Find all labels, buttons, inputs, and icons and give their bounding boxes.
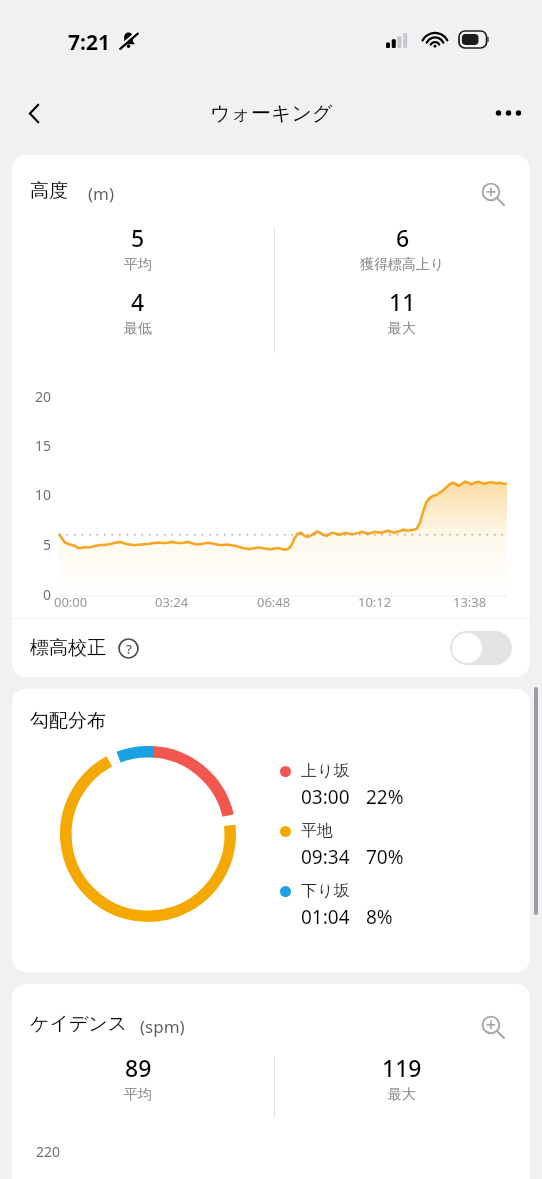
staticText: 最大 [388, 320, 416, 338]
staticText: 5 [43, 535, 52, 554]
staticText: 上り坂 [301, 761, 350, 781]
staticText: 11 [389, 286, 416, 317]
staticText: 22% [366, 784, 404, 810]
button[interactable]: Expand cadence chart [472, 1006, 514, 1048]
staticText: ウォーキング [210, 101, 333, 126]
staticText: 0 [43, 585, 52, 604]
staticText: 標高校正 [30, 636, 106, 660]
staticText: 13:38 [453, 593, 487, 611]
staticText: 勾配分布 [30, 709, 106, 733]
staticText: 5 [131, 222, 145, 253]
staticText: 89 [125, 1052, 152, 1083]
staticText: 01:04 [301, 904, 350, 930]
staticText: ? [126, 640, 132, 658]
staticText: 7:21 [68, 28, 110, 57]
staticText: 220 [36, 1142, 61, 1161]
staticText: 00:00 [54, 593, 88, 611]
button[interactable]: More options [480, 85, 536, 141]
staticText: 6 [396, 222, 410, 253]
staticText: 15 [35, 436, 52, 455]
staticText: 平均 [124, 256, 152, 274]
staticText: 下り坂 [301, 881, 350, 901]
staticText: 4 [131, 286, 145, 317]
button[interactable]: Back [6, 85, 62, 141]
staticText: 平均 [124, 1086, 152, 1104]
staticText: 高度 [30, 179, 68, 203]
staticText: 06:48 [257, 593, 291, 611]
staticText: 最低 [124, 320, 152, 338]
staticText: ケイデンス [30, 1012, 128, 1036]
staticText: 8% [366, 904, 393, 930]
staticText: 平地 [301, 821, 333, 841]
staticText: 10 [35, 485, 52, 504]
staticText: 10:12 [358, 593, 392, 611]
button[interactable]: 標高校正 [12, 619, 530, 677]
staticText: 獲得標高上り [360, 256, 445, 274]
staticText: (spm) [140, 1015, 185, 1038]
staticText: 119 [382, 1052, 422, 1083]
staticText: 09:34 [301, 844, 350, 870]
staticText: 20 [35, 387, 52, 406]
staticText: 03:24 [155, 593, 189, 611]
staticText: (m) [88, 182, 115, 205]
staticText: 03:00 [301, 784, 350, 810]
staticText: 最大 [388, 1086, 416, 1104]
button[interactable]: Expand altitude chart [472, 173, 514, 215]
staticText: 70% [366, 844, 404, 870]
